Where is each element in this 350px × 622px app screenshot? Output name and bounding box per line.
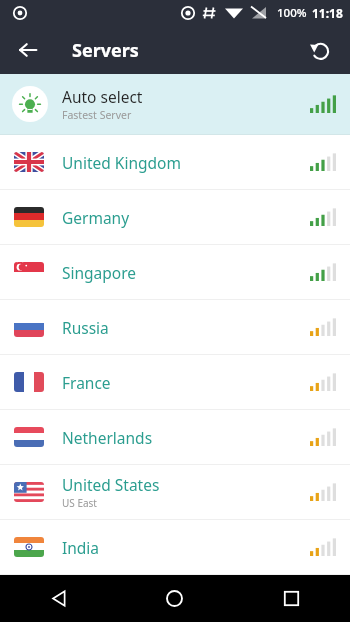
staticText: 11:18 <box>312 5 343 21</box>
button[interactable]: Singapore <box>0 245 350 299</box>
button[interactable]: Auto select <box>0 74 350 134</box>
button[interactable]: Netherlands <box>0 410 350 464</box>
button[interactable]: Recent apps <box>233 575 350 622</box>
staticText: Germany <box>62 207 130 228</box>
button[interactable]: Home <box>116 575 233 622</box>
staticText: 100% <box>277 5 307 21</box>
button[interactable]: Germany <box>0 190 350 244</box>
staticText: US East <box>62 496 97 510</box>
staticText: United Kingdom <box>62 152 181 173</box>
staticText: United States <box>62 474 160 495</box>
staticText: Auto select <box>62 86 143 107</box>
button[interactable]: Back <box>8 30 48 70</box>
button[interactable]: India <box>0 520 350 574</box>
staticText: Russia <box>62 317 109 338</box>
staticText: Servers <box>72 38 139 63</box>
staticText: Netherlands <box>62 427 153 448</box>
button[interactable]: United Kingdom <box>0 135 350 189</box>
staticText: Singapore <box>62 262 137 283</box>
button[interactable]: Russia <box>0 300 350 354</box>
staticText: Fastest Server <box>62 108 132 122</box>
staticText: India <box>62 537 100 558</box>
button[interactable]: Back <box>0 575 116 622</box>
staticText: France <box>62 372 111 393</box>
button[interactable]: France <box>0 355 350 409</box>
button[interactable]: Refresh <box>300 30 340 70</box>
button[interactable]: United States <box>0 465 350 519</box>
